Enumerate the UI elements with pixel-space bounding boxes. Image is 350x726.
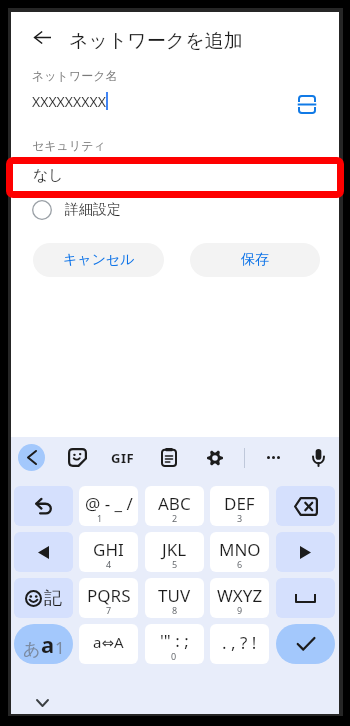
button[interactable]: PQRS bbox=[79, 578, 138, 618]
staticText: 2 bbox=[172, 512, 178, 524]
staticText: 6 bbox=[237, 558, 243, 570]
button[interactable]: GHI bbox=[79, 532, 138, 572]
button[interactable]: Hide keyboard bbox=[31, 692, 53, 714]
button[interactable]: . , ? ! bbox=[210, 624, 269, 664]
button[interactable]: 保存 bbox=[190, 243, 320, 277]
staticText: なし bbox=[33, 166, 64, 185]
button[interactable]: GIF bbox=[109, 444, 136, 471]
button[interactable]: Voice input bbox=[305, 444, 332, 471]
staticText: 5 bbox=[172, 558, 178, 570]
button[interactable]: ABC bbox=[145, 486, 204, 526]
button[interactable]: @ - _ / bbox=[79, 486, 138, 526]
button[interactable]: Previous toolbar page bbox=[18, 444, 45, 471]
button[interactable]: Settings bbox=[201, 444, 228, 471]
staticText: 1 bbox=[97, 512, 103, 524]
button[interactable]: なし bbox=[14, 158, 334, 192]
button[interactable]: DEF bbox=[210, 486, 269, 526]
button[interactable]: Backspace bbox=[276, 486, 335, 526]
button[interactable]: MNO bbox=[210, 532, 269, 572]
button[interactable]: 記 bbox=[14, 578, 73, 618]
staticText: ネットワークを追加 bbox=[69, 29, 243, 53]
staticText: 詳細設定 bbox=[65, 201, 121, 219]
staticText: MNO bbox=[219, 538, 261, 561]
staticText: GHI bbox=[93, 538, 124, 561]
button[interactable]: キャンセル bbox=[33, 243, 164, 277]
staticText: GIF bbox=[111, 449, 135, 467]
staticText: セキュリティ bbox=[32, 138, 106, 153]
staticText: 7 bbox=[106, 604, 112, 616]
staticText: キャンセル bbox=[63, 251, 135, 269]
staticText: ABC bbox=[158, 492, 191, 515]
button[interactable]: Enter bbox=[276, 624, 335, 664]
staticText: DEF bbox=[224, 492, 255, 515]
staticText: 記 bbox=[44, 587, 62, 610]
button[interactable]: Space bbox=[276, 578, 335, 618]
staticText: ネットワーク名 bbox=[32, 68, 118, 83]
button[interactable]: Back bbox=[27, 22, 58, 53]
button[interactable]: WXYZ bbox=[210, 578, 269, 618]
staticText: 3 bbox=[237, 512, 243, 524]
staticText: a⇔A bbox=[93, 632, 124, 652]
staticText: 8 bbox=[172, 604, 178, 616]
staticText: a bbox=[41, 629, 55, 659]
staticText: 0 bbox=[171, 650, 177, 662]
button[interactable]: Cursor left bbox=[14, 532, 73, 572]
button[interactable]: a⇔A bbox=[79, 624, 138, 664]
button[interactable]: あ bbox=[14, 624, 73, 664]
staticText: XXXXXXXXX bbox=[32, 92, 106, 110]
staticText: PQRS bbox=[87, 584, 131, 607]
staticText: あ bbox=[23, 639, 41, 660]
staticText: JKL bbox=[162, 538, 187, 561]
staticText: 9 bbox=[237, 604, 243, 616]
staticText: . , ? ! bbox=[222, 631, 257, 654]
button[interactable]: More options bbox=[260, 444, 287, 471]
button[interactable]: Cursor right bbox=[276, 532, 335, 572]
staticText: 1 bbox=[55, 636, 65, 659]
staticText: 保存 bbox=[241, 251, 269, 269]
button[interactable]: Scan QR code bbox=[294, 91, 320, 117]
staticText: '" : ; bbox=[160, 629, 189, 652]
button[interactable]: Stickers bbox=[64, 444, 91, 471]
staticText: @ - _ / bbox=[85, 492, 133, 515]
button[interactable]: JKL bbox=[145, 532, 204, 572]
button[interactable]: Undo bbox=[14, 486, 73, 526]
staticText: 4 bbox=[106, 558, 112, 570]
button[interactable]: TUV bbox=[145, 578, 204, 618]
button[interactable]: 詳細設定 bbox=[32, 196, 121, 224]
button[interactable]: '" : ; bbox=[145, 624, 204, 664]
staticText: WXYZ bbox=[217, 584, 263, 607]
button[interactable]: Clipboard bbox=[155, 444, 182, 471]
staticText: TUV bbox=[158, 584, 191, 607]
